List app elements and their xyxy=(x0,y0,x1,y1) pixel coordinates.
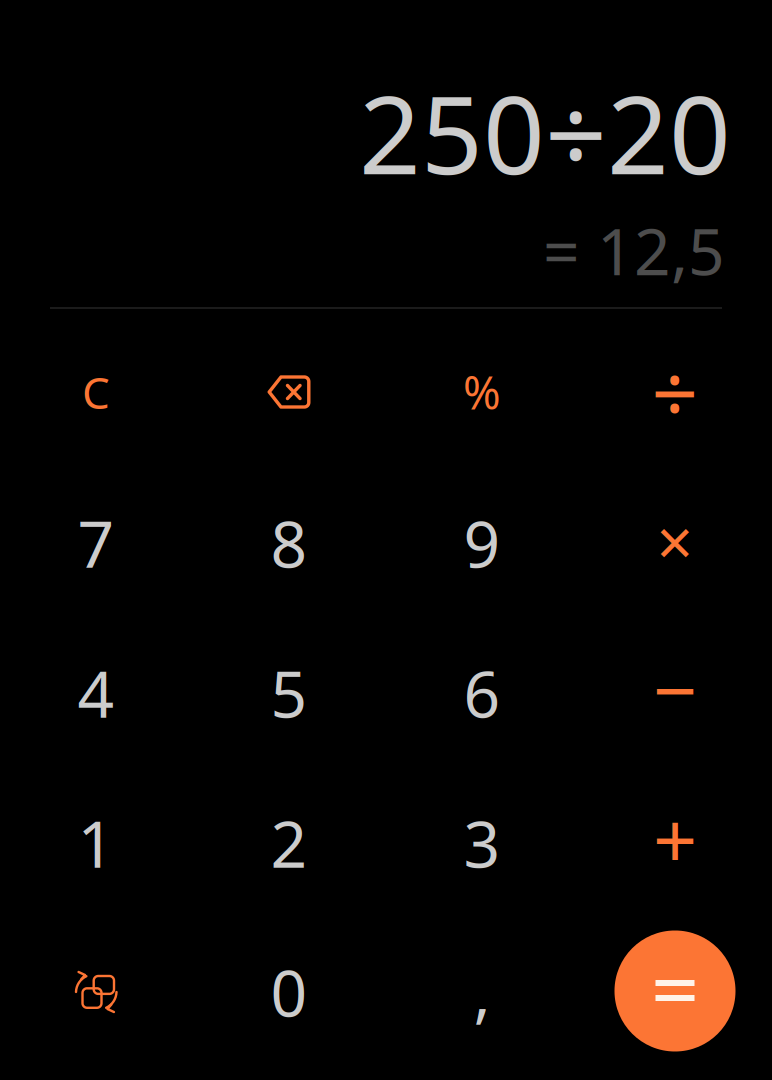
staticText: 3 xyxy=(463,800,500,885)
staticText: 1 xyxy=(77,800,114,885)
staticText: 7 xyxy=(77,500,114,585)
button[interactable]: 9 xyxy=(389,470,575,616)
staticText: + xyxy=(653,788,697,890)
button[interactable]: × xyxy=(582,470,768,616)
button[interactable]: Swap units xyxy=(3,919,189,1065)
staticText: 9 xyxy=(463,500,500,585)
button[interactable]: 6 xyxy=(389,620,575,766)
staticText: 5 xyxy=(270,650,307,735)
button[interactable]: ÷ xyxy=(582,319,768,465)
button[interactable]: 0 xyxy=(196,919,382,1065)
button[interactable]: 2 xyxy=(196,770,382,916)
staticText: 4 xyxy=(77,650,114,735)
button[interactable]: , xyxy=(389,919,575,1065)
button[interactable]: 4 xyxy=(3,620,189,766)
staticText: 0 xyxy=(270,949,307,1034)
staticText: 6 xyxy=(463,650,500,735)
button[interactable]: % xyxy=(389,319,575,465)
staticText: ÷ xyxy=(651,338,698,446)
button[interactable]: 5 xyxy=(196,620,382,766)
button[interactable]: 3 xyxy=(389,770,575,916)
staticText: = 12,5 xyxy=(543,208,725,293)
staticText: 8 xyxy=(270,500,307,585)
button[interactable]: Equals xyxy=(599,915,751,1067)
staticText: 2 xyxy=(270,800,307,885)
staticText: 250÷20 xyxy=(359,61,731,204)
button[interactable]: + xyxy=(582,770,768,916)
button[interactable]: − xyxy=(582,620,768,766)
button[interactable]: 1 xyxy=(3,770,189,916)
staticText: C xyxy=(82,363,110,421)
button[interactable]: 7 xyxy=(3,470,189,616)
button[interactable]: Delete xyxy=(196,319,382,465)
staticText: , xyxy=(473,949,490,1034)
staticText: × xyxy=(656,498,693,583)
staticText: − xyxy=(653,638,697,740)
button[interactable]: C xyxy=(3,319,189,465)
staticText: % xyxy=(463,362,501,422)
button[interactable]: 8 xyxy=(196,470,382,616)
